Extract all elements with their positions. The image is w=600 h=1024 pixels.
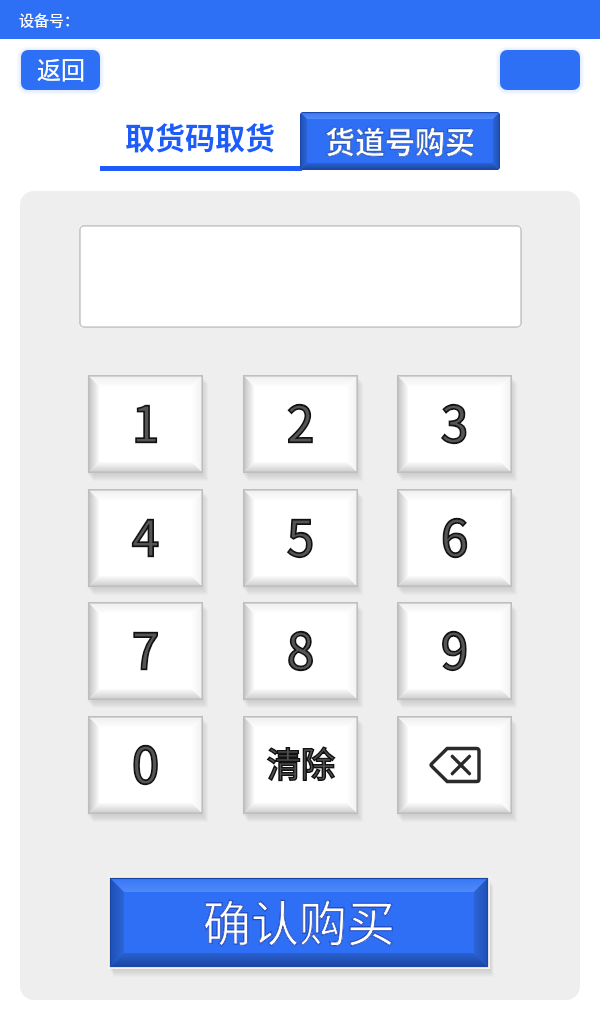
button[interactable]: 6	[397, 489, 512, 587]
button[interactable]: 4	[88, 489, 203, 587]
button[interactable]: 5	[243, 489, 358, 587]
button[interactable]	[108, 876, 492, 971]
button[interactable]: 菜单	[496, 46, 584, 94]
button[interactable]: 7	[88, 602, 203, 700]
button[interactable]: 返回	[17, 46, 104, 94]
button[interactable]	[100, 108, 300, 163]
button[interactable]: 8	[243, 602, 358, 700]
button[interactable]: 1	[88, 375, 203, 473]
button[interactable]: 0	[88, 716, 203, 814]
button[interactable]	[300, 112, 500, 170]
button[interactable]: 输入框	[79, 225, 522, 328]
button[interactable]: 退格	[397, 716, 512, 814]
button[interactable]: 3	[397, 375, 512, 473]
button[interactable]: 2	[243, 375, 358, 473]
button[interactable]: 清除	[243, 716, 358, 814]
button[interactable]: 9	[397, 602, 512, 700]
